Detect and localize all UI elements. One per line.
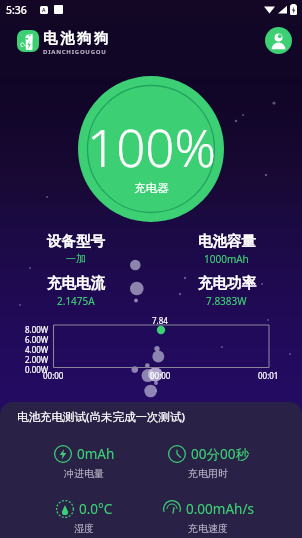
staticText: 充电器 bbox=[134, 181, 169, 195]
button[interactable]: Account bbox=[265, 27, 292, 54]
staticText: A bbox=[42, 7, 46, 14]
staticText: 电池充电测试(尚未完成一次测试) bbox=[17, 409, 185, 425]
staticText: 00:00 bbox=[150, 370, 171, 381]
staticText: 0.0°C bbox=[79, 500, 113, 518]
button[interactable]: 0.00mAh/s bbox=[146, 500, 270, 535]
staticText: 7.84 bbox=[152, 315, 168, 326]
staticText: 6.00W bbox=[25, 334, 49, 344]
staticText: 充电电流 bbox=[47, 274, 105, 292]
staticText: 充电功率 bbox=[198, 274, 256, 292]
staticText: 00:00 bbox=[43, 370, 64, 381]
button[interactable]: 0.0°C bbox=[22, 500, 146, 535]
button[interactable]: 充电功率 bbox=[151, 274, 302, 308]
staticText: 5:36 bbox=[6, 3, 27, 17]
staticText: 充电速度 bbox=[188, 522, 228, 535]
staticText: 2.1475A bbox=[57, 294, 95, 308]
button[interactable]: 电池容量 bbox=[151, 232, 302, 266]
staticText: 0.00mAh/s bbox=[186, 500, 254, 518]
staticText: 1000mAh bbox=[204, 252, 249, 266]
staticText: 电池狗狗 bbox=[43, 29, 111, 47]
staticText: 00:01 bbox=[258, 370, 279, 381]
staticText: 冲进电量 bbox=[64, 467, 104, 480]
staticText: 湿度 bbox=[74, 522, 94, 535]
staticText: 100% bbox=[87, 112, 216, 181]
staticText: 7.8383W bbox=[206, 294, 247, 308]
staticText: 0.00W bbox=[25, 364, 49, 374]
staticText: 充电用时 bbox=[188, 467, 228, 480]
button[interactable]: 0mAh bbox=[22, 445, 146, 480]
staticText: 8.00W bbox=[25, 324, 49, 334]
staticText: 00分00秒 bbox=[191, 445, 249, 463]
staticText: 0mAh bbox=[77, 445, 115, 463]
staticText: 一加 bbox=[66, 252, 86, 265]
staticText: 4.00W bbox=[25, 344, 49, 354]
button[interactable]: 充电电流 bbox=[0, 274, 151, 308]
staticText: 电池容量 bbox=[198, 232, 256, 250]
staticText: 2.00W bbox=[25, 354, 49, 364]
button[interactable]: 00分00秒 bbox=[146, 445, 270, 480]
staticText: 设备型号 bbox=[47, 232, 105, 250]
staticText: DIANCHIGOUGOU bbox=[43, 48, 107, 56]
button[interactable]: 设备型号 bbox=[0, 232, 151, 265]
